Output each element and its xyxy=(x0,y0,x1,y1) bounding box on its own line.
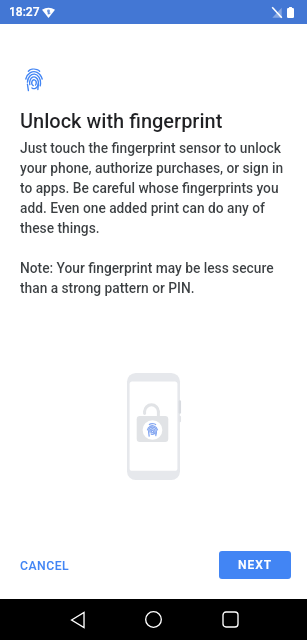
button[interactable]: Home xyxy=(131,599,176,640)
staticText: NEXT xyxy=(238,558,273,572)
staticText: Just touch the fingerprint sensor to unl… xyxy=(20,138,289,298)
button[interactable]: NEXT xyxy=(219,551,291,579)
button[interactable]: Back xyxy=(55,599,100,640)
button[interactable]: Recent apps xyxy=(208,599,253,640)
staticText: 18:27 xyxy=(9,5,40,19)
button[interactable]: CANCEL xyxy=(12,552,78,580)
staticText: Unlock with fingerprint xyxy=(20,109,223,133)
staticText: CANCEL xyxy=(20,559,70,573)
